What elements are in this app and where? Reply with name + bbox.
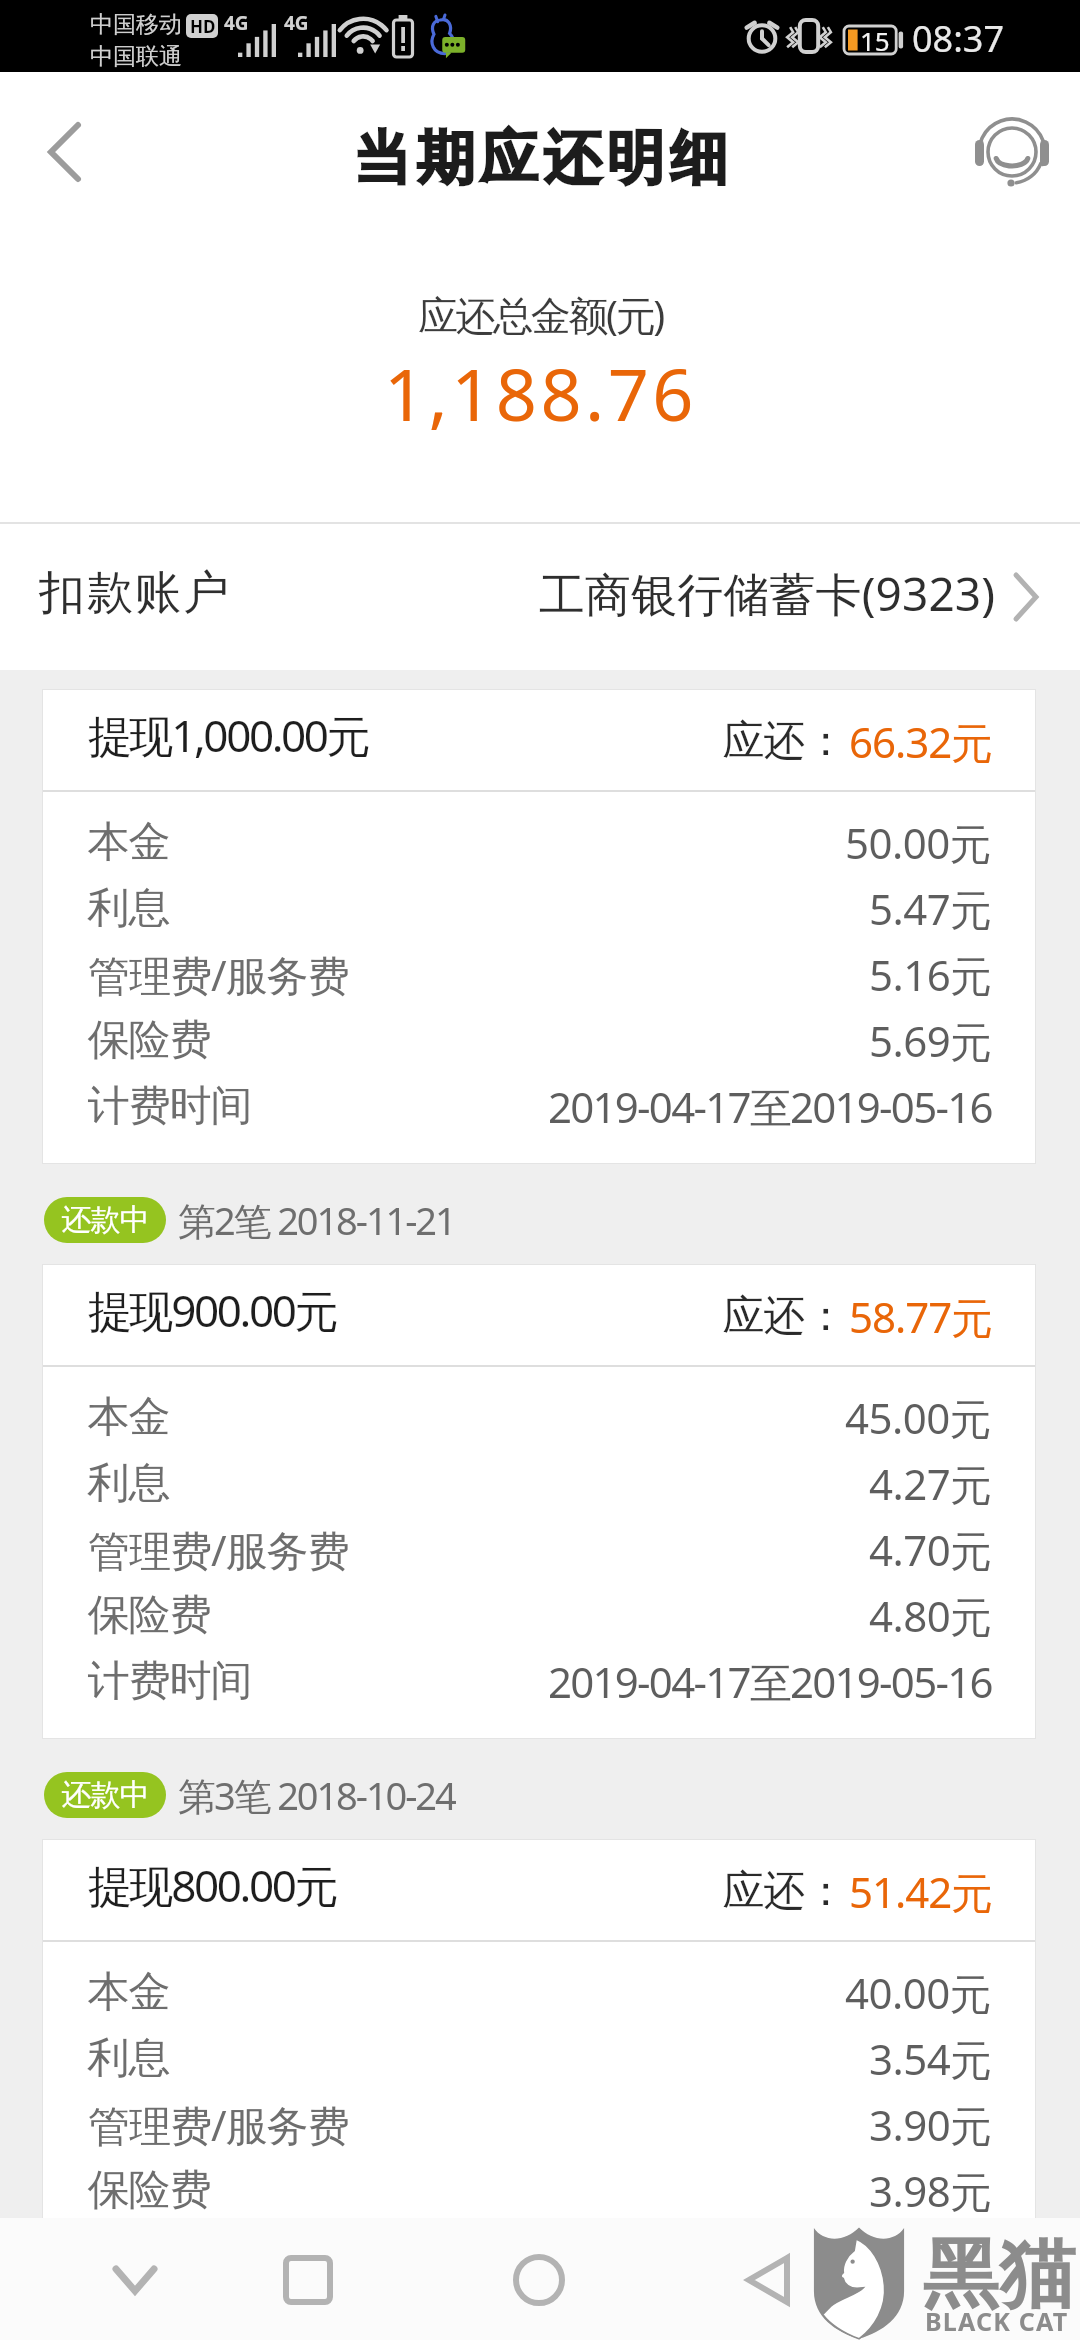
button[interactable]: 扣款账户 — [0, 524, 1080, 670]
staticText: 当期应还明细 — [353, 122, 734, 195]
staticText: 40.00元 — [845, 1964, 992, 2021]
button[interactable]: Customer service — [962, 102, 1062, 202]
staticText: 提现900.00元 — [88, 1280, 337, 1340]
staticText: 15 — [860, 23, 890, 58]
staticText: 黑猫 — [922, 2227, 1076, 2323]
staticText: 应还总金额(元) — [418, 287, 663, 342]
button[interactable]: Back — [0, 87, 120, 217]
staticText: 本金 — [88, 1966, 170, 2019]
button[interactable]: Home — [479, 2230, 599, 2330]
staticText: 3.98元 — [869, 2162, 992, 2218]
staticText: 5.47元 — [869, 880, 992, 937]
button[interactable]: 还款中 — [44, 1772, 166, 1818]
staticText: 2019-04-17至2019-05-16 — [548, 1078, 992, 1135]
button[interactable]: Back — [708, 2230, 828, 2330]
button[interactable]: 还款中 — [44, 1197, 166, 1243]
staticText: 2019-04-17至2019-05-16 — [548, 1653, 992, 1710]
staticText: 利息 — [88, 2032, 170, 2085]
staticText: 提现1,000.00元 — [88, 705, 369, 765]
staticText: 58.77元 — [849, 1288, 993, 1345]
staticText: 应还： — [723, 1865, 846, 1918]
staticText: 工商银行储蓄卡(9323) — [539, 562, 996, 625]
staticText: 5.69元 — [869, 1012, 992, 1069]
button[interactable]: Hide keyboard — [75, 2230, 195, 2330]
staticText: 本金 — [88, 816, 170, 869]
staticText: 扣款账户 — [38, 564, 230, 622]
staticText: 利息 — [88, 1457, 170, 1510]
staticText: 第3笔 2018-10-24 — [178, 1769, 455, 1821]
staticText: 计费时间 — [88, 1080, 252, 1133]
button[interactable]: 提现1,000.00元 — [42, 689, 1036, 1164]
staticText: 4.80元 — [869, 1587, 992, 1644]
staticText: 4G — [224, 10, 249, 36]
staticText: 中国联通 — [90, 42, 182, 71]
staticText: 45.00元 — [845, 1389, 992, 1446]
staticText: 51.42元 — [849, 1863, 993, 1920]
staticText: 1,188.76 — [384, 344, 697, 442]
staticText: 应还： — [723, 1290, 846, 1343]
staticText: 还款中 — [62, 1776, 149, 1814]
button[interactable]: 提现900.00元 — [42, 1264, 1036, 1739]
staticText: 管理费/服务费 — [88, 946, 349, 1003]
staticText: 50.00元 — [845, 814, 992, 871]
staticText: 提现800.00元 — [88, 1855, 337, 1915]
staticText: BLACK CAT — [925, 2304, 1069, 2338]
staticText: 保险费 — [88, 2164, 211, 2217]
staticText: 保险费 — [88, 1014, 211, 1067]
staticText: 本金 — [88, 1391, 170, 1444]
staticText: 管理费/服务费 — [88, 2096, 349, 2153]
staticText: 4G — [284, 10, 309, 36]
staticText: 中国移动 — [90, 10, 182, 39]
staticText: HD — [190, 15, 216, 38]
staticText: 第2笔 2018-11-21 — [178, 1194, 455, 1246]
staticText: 4.70元 — [869, 1521, 992, 1578]
staticText: 还款中 — [62, 1201, 149, 1239]
staticText: 3.90元 — [869, 2096, 992, 2153]
staticText: 3.54元 — [869, 2030, 992, 2087]
staticText: 管理费/服务费 — [88, 1521, 349, 1578]
staticText: 利息 — [88, 882, 170, 935]
staticText: 计费时间 — [88, 1655, 252, 1708]
button[interactable]: Recent apps — [248, 2230, 368, 2330]
staticText: 5.16元 — [869, 946, 992, 1003]
staticText: 08:37 — [912, 14, 1005, 63]
button[interactable]: 提现800.00元 — [42, 1839, 1036, 2218]
staticText: 应还： — [723, 715, 846, 768]
staticText: 保险费 — [88, 1589, 211, 1642]
staticText: 66.32元 — [849, 713, 993, 770]
staticText: 4.27元 — [869, 1455, 992, 1512]
